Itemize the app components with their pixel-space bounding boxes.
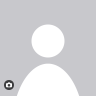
- button[interactable]: Change photo: [4, 80, 14, 90]
